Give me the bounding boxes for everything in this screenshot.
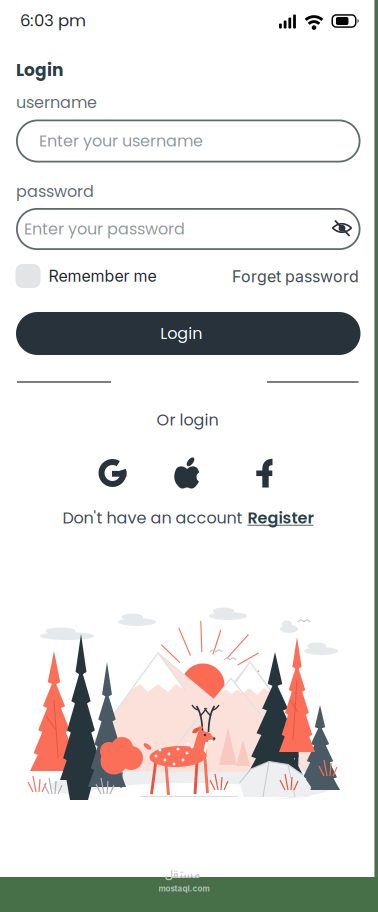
button[interactable]: Show password — [329, 215, 355, 241]
staticText: Register — [247, 507, 313, 529]
button[interactable]: Login with Facebook — [244, 453, 284, 493]
staticText: Forget password — [232, 267, 359, 286]
button[interactable]: Register — [247, 507, 313, 529]
staticText: password — [16, 180, 94, 203]
staticText: Enter your password — [24, 218, 185, 240]
button[interactable]: Login with Google — [92, 453, 132, 493]
button[interactable]: Forget password — [232, 267, 359, 286]
button[interactable]: Enter your username — [16, 119, 360, 162]
staticText: Enter your username — [39, 130, 203, 152]
staticText: Don't have an account — [62, 507, 242, 529]
staticText: Login — [160, 322, 202, 345]
staticText: Or login — [156, 409, 218, 431]
button[interactable]: Login — [16, 312, 360, 355]
staticText: 6:03 pm — [20, 9, 86, 32]
staticText: Login — [16, 58, 63, 82]
button[interactable]: Login with Apple — [167, 453, 207, 493]
button[interactable]: Remember me — [15, 264, 156, 288]
staticText: mostaql.com — [158, 884, 209, 893]
button[interactable]: Enter your password — [16, 208, 360, 250]
staticText: Remember me — [48, 267, 156, 285]
staticText: username — [16, 91, 97, 114]
staticText: مستقل — [164, 863, 199, 886]
